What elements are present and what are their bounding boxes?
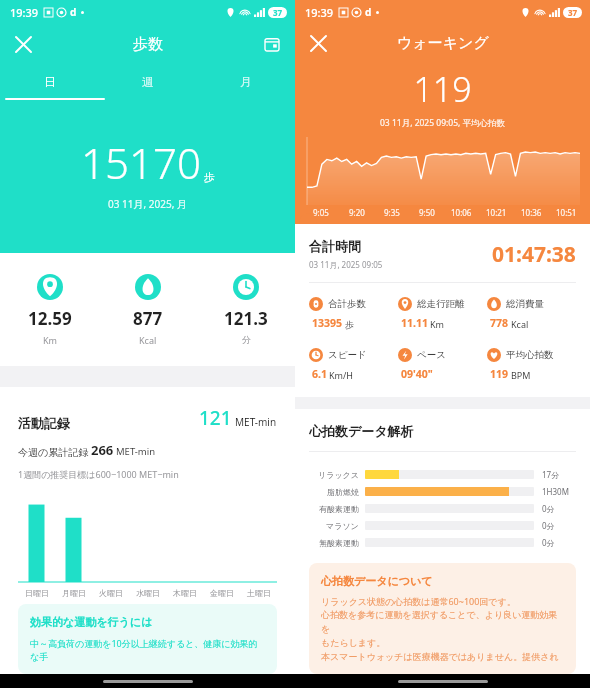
staticText: MET-min	[116, 445, 156, 458]
staticText: 15170	[81, 134, 201, 191]
staticText: 9:20	[349, 207, 365, 218]
staticText: スピード	[328, 349, 367, 361]
staticText: 01:47:38	[492, 240, 576, 269]
staticText: ウォーキング	[397, 34, 489, 53]
staticText: 9:35	[384, 207, 400, 218]
staticText: 土曜日	[247, 588, 271, 598]
button[interactable]: Close	[303, 28, 333, 58]
staticText: 119	[295, 66, 590, 112]
button[interactable]: 効果的な運動を行うには	[18, 604, 277, 674]
staticText: 6.1	[312, 367, 327, 381]
staticText: 12.59	[28, 307, 72, 330]
staticText: 121.3	[224, 307, 268, 330]
button[interactable]: 週	[99, 64, 197, 98]
staticText: BPM	[511, 369, 531, 381]
staticText: 13395	[312, 316, 343, 330]
staticText: 脂肪燃焼	[327, 487, 359, 497]
staticText: 09'40"	[401, 367, 433, 381]
staticText: 水曜日	[136, 588, 160, 598]
staticText: d	[70, 5, 77, 19]
staticText: Km/H	[329, 369, 354, 381]
staticText: 週	[142, 74, 154, 89]
staticText: 19:39	[10, 5, 39, 20]
staticText: 10:51	[556, 207, 577, 218]
staticText: 03 11月, 2025, 月	[0, 197, 295, 211]
staticText: 1H30M	[542, 486, 569, 497]
staticText: 266	[91, 441, 114, 459]
staticText: 03 11月, 2025 09:05	[309, 259, 383, 270]
staticText: リラックス状態の心拍数は通常60~100回です。 心拍数を参考に運動を選択するこ…	[321, 595, 564, 663]
staticText: 心拍数データ解析	[309, 423, 414, 439]
staticText: Kcal	[139, 334, 157, 346]
staticText: 月	[240, 74, 252, 89]
staticText: 有酸素運動	[319, 504, 359, 514]
staticText: マラソン	[326, 521, 359, 531]
staticText: 無酸素運動	[319, 538, 359, 548]
staticText: 1週間の推奨目標は600−1000 MET−min	[18, 468, 179, 480]
staticText: 平均心拍数	[506, 349, 554, 361]
staticText: 37	[273, 7, 283, 18]
staticText: 877	[133, 307, 163, 330]
staticText: 17分	[542, 469, 560, 480]
staticText: 19:39	[305, 5, 334, 20]
staticText: 月曜日	[62, 588, 86, 598]
staticText: 中～高負荷の運動を10分以上継続すると、健康に効果的な手 助けになります。	[30, 637, 265, 663]
staticText: 火曜日	[99, 588, 123, 598]
staticText: ペース	[417, 349, 446, 361]
staticText: Km	[43, 334, 57, 346]
staticText: 歩	[204, 170, 215, 184]
button[interactable]: 月	[197, 64, 295, 98]
staticText: 歩	[345, 319, 354, 330]
staticText: d	[365, 5, 372, 19]
staticText: 分	[242, 334, 251, 345]
staticText: 総消費量	[506, 298, 544, 310]
staticText: 心拍数データについて	[321, 574, 433, 588]
staticText: 9:50	[419, 207, 435, 218]
staticText: Km	[430, 318, 444, 330]
staticText: 効果的な運動を行うには	[30, 615, 153, 629]
staticText: 778	[490, 316, 509, 330]
staticText: 10:36	[521, 207, 542, 218]
staticText: 0分	[542, 537, 555, 548]
button[interactable]: Calendar	[257, 29, 287, 59]
button[interactable]: 日	[0, 64, 99, 98]
staticText: 今週の累計記録	[18, 446, 89, 459]
staticText: 合計時間	[309, 238, 361, 254]
staticText: 119	[490, 367, 509, 381]
staticText: 0分	[542, 503, 555, 514]
button[interactable]: Close	[8, 29, 38, 59]
staticText: 日曜日	[25, 588, 49, 598]
staticText: 合計歩数	[328, 298, 366, 310]
staticText: 金曜日	[210, 588, 234, 598]
staticText: リラックス	[318, 470, 359, 480]
staticText: MET-min	[235, 415, 277, 429]
button[interactable]: 心拍数データについて	[309, 563, 576, 674]
staticText: 総走行距離	[417, 298, 465, 310]
staticText: 0分	[542, 520, 555, 531]
staticText: 歩数	[133, 35, 163, 54]
staticText: 121	[199, 405, 232, 431]
staticText: 11.11	[401, 316, 428, 330]
staticText: 日	[44, 74, 56, 89]
staticText: 活動記録	[18, 415, 70, 431]
staticText: 木曜日	[173, 588, 197, 598]
staticText: 03 11月, 2025 09:05, 平均心拍数	[295, 117, 590, 129]
staticText: Kcal	[511, 318, 529, 330]
staticText: 37	[568, 7, 578, 18]
staticText: 10:21	[486, 207, 507, 218]
staticText: 9:05	[313, 207, 329, 218]
staticText: 10:06	[451, 207, 472, 218]
